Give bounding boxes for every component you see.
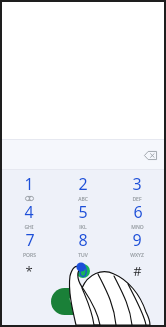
staticText: MNO [131, 224, 144, 229]
staticText: 7 [25, 229, 35, 251]
button[interactable]: 8 [56, 229, 110, 257]
staticText: ABC [78, 196, 88, 201]
staticText: 1 [24, 173, 34, 195]
staticText: GHI [24, 224, 34, 229]
staticText: WXYZ [130, 252, 144, 257]
button[interactable]: 6 [110, 201, 164, 229]
staticText: 0 [78, 260, 88, 282]
button[interactable]: 3 [110, 173, 164, 201]
staticText: 9 [132, 229, 142, 251]
button[interactable]: Call [51, 288, 115, 315]
staticText: * [25, 262, 33, 280]
staticText: TUV [78, 252, 88, 257]
button[interactable]: 1 [2, 173, 56, 201]
staticText: 3 [132, 173, 142, 195]
button[interactable]: Backspace [141, 147, 160, 163]
staticText: # [133, 262, 142, 280]
staticText: DEF [132, 196, 142, 201]
staticText: 6 [133, 201, 143, 223]
button[interactable]: 0 [56, 257, 110, 285]
button[interactable]: 9 [110, 229, 164, 257]
staticText: 4 [24, 201, 34, 223]
staticText: 8 [78, 229, 88, 251]
button[interactable]: 7 [2, 229, 56, 257]
staticText: 2 [78, 173, 88, 195]
button[interactable]: 4 [2, 201, 56, 229]
button[interactable]: 5 [56, 201, 110, 229]
button[interactable]: 2 [56, 173, 110, 201]
staticText: JKL [79, 224, 87, 229]
staticText: PQRS [23, 252, 36, 257]
button[interactable]: * [2, 257, 56, 285]
button[interactable]: # [110, 257, 164, 285]
staticText: 5 [78, 201, 88, 223]
